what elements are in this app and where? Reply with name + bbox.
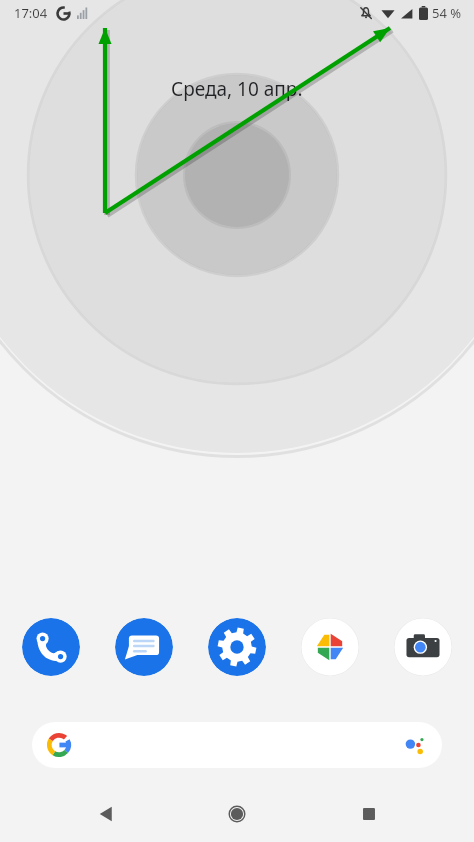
button[interactable]: Среда, 10 апр. [171,76,303,102]
staticText: Среда, 10 апр. [171,76,303,102]
button[interactable]: Phone [22,618,80,676]
button[interactable]: Settings [208,618,266,676]
button[interactable]: Messages [115,618,173,676]
button[interactable] [32,722,442,768]
button[interactable]: Home [211,788,263,840]
staticText: 54 % [432,4,462,22]
staticText: 17:04 [14,4,48,22]
button[interactable]: Camera [394,618,452,676]
button[interactable]: Photos [301,618,359,676]
button[interactable]: Recents [343,788,395,840]
button[interactable]: Back [80,788,132,840]
